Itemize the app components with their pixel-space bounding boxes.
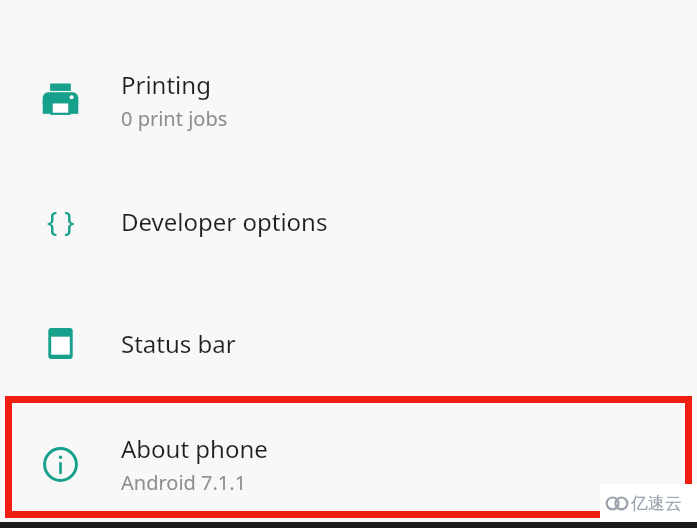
staticText: Developer options	[121, 205, 328, 238]
other: About phone	[0, 446, 121, 483]
other: Status bar	[0, 325, 121, 362]
button[interactable]: About phone	[0, 404, 697, 524]
other: Printing	[0, 82, 121, 119]
staticText: { }	[47, 203, 75, 240]
staticText: 0 print jobs	[121, 105, 228, 132]
button[interactable]: Developer options	[0, 160, 697, 282]
staticText: Android 7.1.1	[121, 469, 247, 496]
staticText: Status bar	[121, 327, 236, 360]
staticText: 亿速云	[631, 493, 682, 514]
other: Developer options	[0, 203, 121, 240]
staticText: About phone	[121, 432, 268, 465]
button[interactable]: Printing	[0, 40, 697, 160]
button[interactable]: Status bar	[0, 282, 697, 404]
staticText: Printing	[121, 68, 211, 101]
